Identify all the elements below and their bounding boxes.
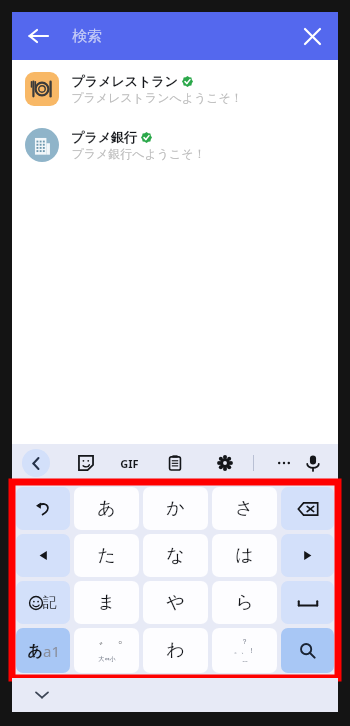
- staticText: あ: [97, 497, 116, 520]
- button[interactable]: Move left: [16, 534, 70, 577]
- button[interactable]: さ: [212, 487, 277, 530]
- button[interactable]: や: [143, 581, 208, 624]
- staticText: 大⇔小: [98, 655, 116, 663]
- button[interactable]: Undo: [16, 487, 70, 530]
- button[interactable]: Voice input: [298, 448, 328, 478]
- button[interactable]: た: [74, 534, 139, 577]
- button[interactable]: Search: [281, 628, 334, 673]
- staticText: や: [166, 591, 185, 614]
- other: Search: [299, 642, 316, 659]
- staticText: ？: [241, 637, 248, 646]
- button[interactable]: Close: [294, 18, 330, 54]
- staticText: ま: [97, 591, 116, 614]
- staticText: プラメレストラン: [71, 73, 178, 89]
- button[interactable]: ゛: [74, 628, 139, 673]
- staticText: た: [97, 544, 116, 567]
- staticText: 、: [241, 646, 248, 655]
- button[interactable]: あ: [16, 628, 70, 673]
- staticText: あ: [27, 642, 43, 661]
- staticText: ら: [235, 591, 254, 614]
- button[interactable]: GIF: [120, 449, 139, 477]
- button[interactable]: プラメ銀行: [12, 124, 338, 166]
- button[interactable]: Hide keyboard: [30, 683, 54, 707]
- button[interactable]: プラメレストラン: [12, 68, 338, 110]
- staticText: ゜: [109, 639, 123, 655]
- staticText: プラメ銀行: [71, 129, 137, 145]
- button[interactable]: Move right: [281, 534, 334, 577]
- button[interactable]: か: [143, 487, 208, 530]
- button[interactable]: 記: [16, 581, 70, 624]
- button[interactable]: な: [143, 534, 208, 577]
- staticText: さ: [235, 497, 254, 520]
- button[interactable]: Back: [22, 449, 50, 477]
- staticText: プラメレストランへようこそ！: [71, 90, 243, 105]
- staticText: 検索: [72, 27, 102, 46]
- button[interactable]: は: [212, 534, 277, 577]
- staticText: ！: [248, 646, 255, 655]
- staticText: a1: [43, 641, 60, 661]
- button[interactable]: Clipboard: [161, 449, 189, 477]
- staticText: プラメ銀行へようこそ！: [71, 146, 206, 161]
- other: Backspace: [297, 498, 319, 520]
- button[interactable]: ？: [212, 628, 277, 673]
- button[interactable]: Back: [18, 16, 58, 56]
- button[interactable]: ら: [212, 581, 277, 624]
- button[interactable]: わ: [143, 628, 208, 673]
- other: Move left: [38, 550, 49, 561]
- button[interactable]: Backspace: [281, 487, 334, 530]
- staticText: 。: [234, 646, 241, 655]
- button[interactable]: あ: [74, 487, 139, 530]
- staticText: か: [166, 497, 185, 520]
- other: Undo: [35, 500, 52, 517]
- button[interactable]: More options: [270, 449, 298, 477]
- staticText: GIF: [120, 456, 139, 471]
- staticText: ゛: [90, 639, 104, 655]
- button[interactable]: Space: [281, 581, 334, 624]
- staticText: は: [235, 544, 254, 567]
- other: Space: [297, 597, 319, 609]
- staticText: 記: [43, 594, 57, 612]
- other: Move right: [302, 550, 313, 561]
- button[interactable]: Stickers: [72, 449, 100, 477]
- staticText: わ: [166, 639, 185, 662]
- button[interactable]: ま: [74, 581, 139, 624]
- button[interactable]: Settings: [211, 449, 239, 477]
- staticText: な: [166, 544, 185, 567]
- staticText: …: [242, 655, 248, 665]
